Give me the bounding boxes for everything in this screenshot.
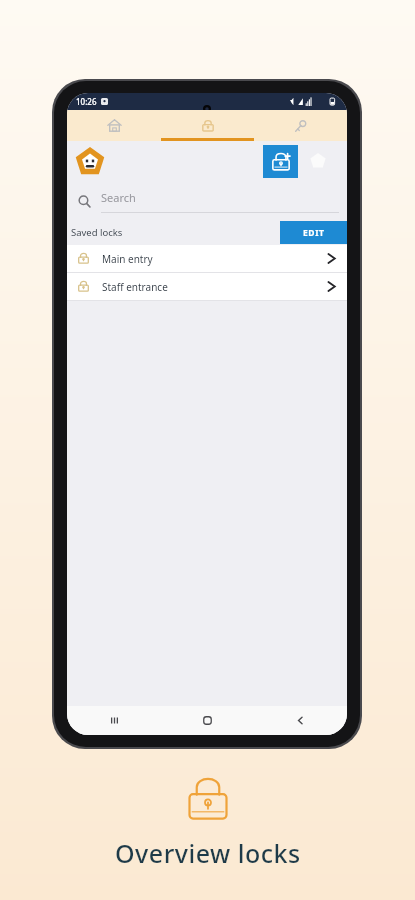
button[interactable]: Back xyxy=(254,706,347,735)
staticText: 10:26 xyxy=(76,96,97,107)
staticText: Search xyxy=(101,190,136,205)
staticText: EDIT xyxy=(303,227,325,239)
button[interactable]: Search xyxy=(78,183,339,220)
button[interactable]: EDIT xyxy=(280,221,347,244)
staticText: Saved locks xyxy=(71,226,123,239)
staticText: Main entry xyxy=(102,252,326,266)
button[interactable]: Add lock xyxy=(263,145,298,178)
button[interactable]: Home xyxy=(161,706,254,735)
button[interactable]: Keys xyxy=(254,110,347,141)
staticText: Staff entrance xyxy=(102,280,326,294)
staticText: Overview locks xyxy=(115,836,301,870)
button[interactable]: Locks xyxy=(161,110,254,141)
button[interactable]: Recents xyxy=(67,706,161,735)
button[interactable]: Staff entrance xyxy=(67,273,347,300)
button[interactable]: Main entry xyxy=(67,245,347,272)
button[interactable]: Home xyxy=(67,110,161,141)
